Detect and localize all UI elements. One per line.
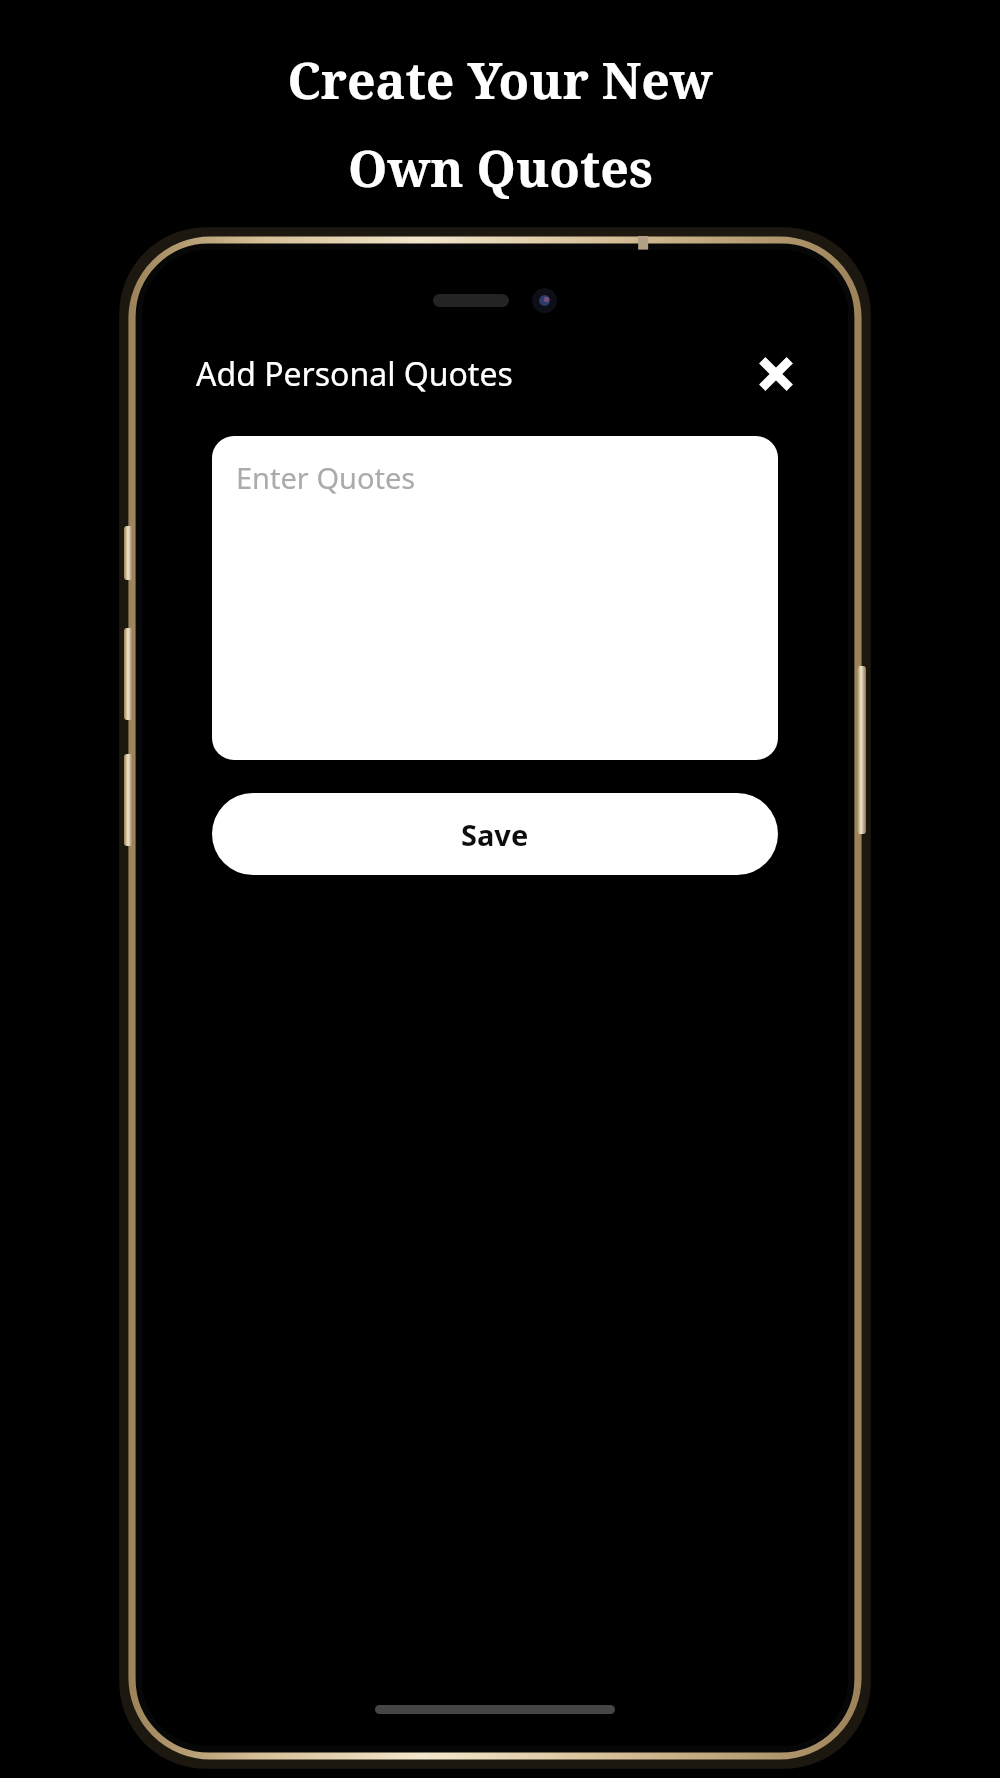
staticText: Create Your New	[287, 46, 713, 114]
staticText: Own Quotes	[348, 134, 653, 202]
staticText: Add Personal Quotes	[196, 352, 513, 396]
button[interactable]: Close	[752, 350, 800, 398]
button[interactable]: Enter Quotes	[212, 436, 778, 760]
button[interactable]: Save	[212, 793, 778, 875]
staticText: Enter Quotes	[236, 458, 416, 497]
staticText: Save	[461, 815, 529, 854]
